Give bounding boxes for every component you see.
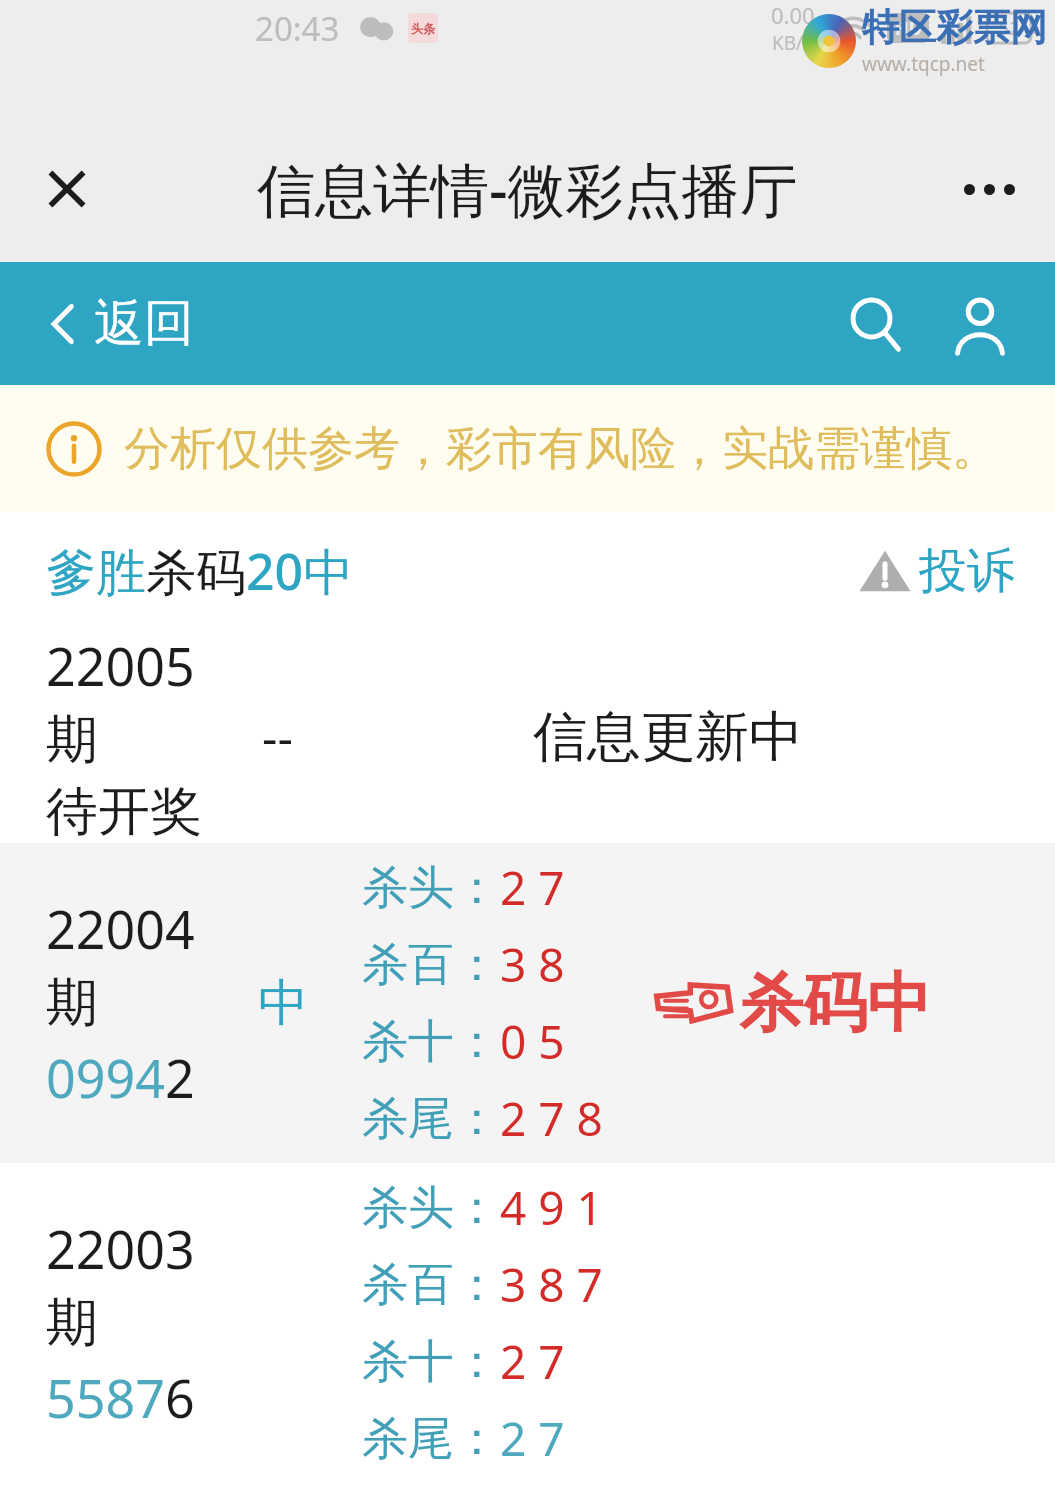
staticText: 杀百： [362,936,500,994]
staticText: 09942 [46,1042,195,1113]
button[interactable]: 搜索 [835,283,917,365]
staticText: HD [895,16,922,41]
staticText: 杀十： [362,1013,500,1071]
staticText: 2 7 8 [500,1087,603,1150]
staticText: KB/S [772,30,814,56]
staticText: 杀尾： [362,1090,500,1148]
staticText: 20:43 [255,6,340,51]
staticText: 信息更新中 [533,703,803,771]
staticText: 头条 [411,21,435,36]
staticText: 杀码中 [739,963,931,1044]
staticText: 55876 [46,1362,195,1433]
staticText: 期 [46,1290,98,1356]
staticText: 期 [46,707,98,773]
button[interactable]: 关闭 [28,150,106,228]
staticText: 2 7 [500,1407,565,1470]
button[interactable]: 22005 [0,630,1055,843]
button[interactable]: 投诉 [853,535,1021,607]
staticText: 3 8 7 [500,1253,603,1316]
staticText: 杀百： [362,1256,500,1314]
staticText: 0.00 [771,0,815,30]
staticText: 期 [46,970,98,1036]
staticText: 杀十： [362,1333,500,1391]
staticText: 22005 [46,630,195,701]
staticText: 投诉 [919,541,1015,601]
staticText: 杀头： [362,1179,500,1237]
staticText: 杀尾： [362,1410,500,1468]
staticText: 中 [258,972,308,1035]
staticText: 返回 [94,292,194,355]
staticText: 4 9 1 [500,1176,603,1239]
button[interactable]: 返回 [40,280,202,367]
staticText: -- [262,704,293,769]
button[interactable]: 更多 [949,149,1029,229]
staticText: 22004 [46,893,195,964]
staticText: 52 [999,16,1020,41]
staticText: 待开奖 [46,779,202,843]
staticText: 2 7 [500,856,565,919]
staticText: 杀头： [362,859,500,917]
staticText: 信息详情-微彩点播厅 [257,149,798,228]
staticText: 分析仅供参考，彩市有风险，实战需谨慎。 [124,420,998,478]
staticText: www.tqcp.net [862,51,985,77]
staticText: 特区彩票网 [862,4,1047,51]
button[interactable]: 我的 [939,283,1021,365]
button[interactable]: 22003 [0,1163,1055,1483]
staticText: 3 8 [500,933,565,996]
staticText: 22003 [46,1213,195,1284]
staticText: 2 7 [500,1330,565,1393]
button[interactable]: 22004 [0,843,1055,1163]
staticText: 0 5 [500,1010,565,1073]
button[interactable]: 爹胜杀码20中 [46,537,354,605]
